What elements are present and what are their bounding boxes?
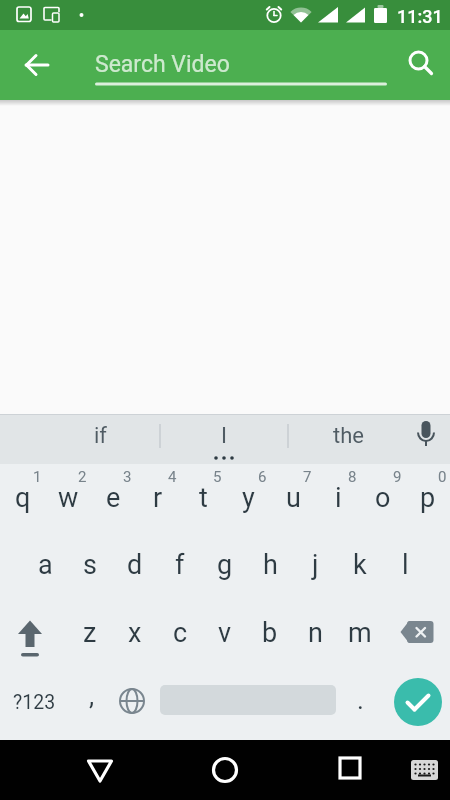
staticText: 3 xyxy=(123,468,132,486)
staticText: . xyxy=(357,685,364,715)
button[interactable]: , xyxy=(72,666,112,726)
staticText: 9 xyxy=(393,468,402,486)
button[interactable]: g xyxy=(203,535,247,595)
staticText: I xyxy=(221,423,227,449)
button[interactable]: t xyxy=(181,470,225,526)
staticText: a xyxy=(38,549,53,581)
button[interactable]: j xyxy=(293,535,337,595)
button[interactable]: z xyxy=(68,603,112,663)
staticText: v xyxy=(218,617,232,649)
staticText: d xyxy=(127,549,143,581)
button[interactable]: i xyxy=(316,470,360,526)
button[interactable]: . xyxy=(340,670,380,730)
staticText: k xyxy=(353,549,367,581)
button[interactable] xyxy=(404,414,450,460)
button[interactable]: ?123 xyxy=(3,672,65,732)
staticText: f xyxy=(175,549,185,581)
staticText: p xyxy=(420,482,436,514)
button[interactable]: p xyxy=(406,470,450,526)
button[interactable] xyxy=(13,41,61,89)
staticText: r xyxy=(153,482,163,514)
button[interactable] xyxy=(395,605,445,663)
staticText: u xyxy=(286,482,301,514)
staticText: 8 xyxy=(348,468,357,486)
button[interactable] xyxy=(8,605,58,663)
button[interactable]: r xyxy=(136,470,180,526)
button[interactable]: q xyxy=(1,470,45,526)
button[interactable]: x xyxy=(113,603,157,663)
button[interactable] xyxy=(394,678,442,726)
staticText: 6 xyxy=(258,468,267,486)
button[interactable] xyxy=(404,752,444,788)
staticText: , xyxy=(89,681,95,711)
button[interactable]: I xyxy=(169,415,279,457)
staticText: x xyxy=(128,617,142,649)
staticText: 11:31 xyxy=(397,6,443,27)
button[interactable]: s xyxy=(68,535,112,595)
staticText: q xyxy=(15,482,31,514)
staticText: h xyxy=(263,549,278,581)
button[interactable]: f xyxy=(158,535,202,595)
button[interactable]: l xyxy=(383,535,427,595)
button[interactable]: the xyxy=(298,415,398,457)
staticText: 1 xyxy=(33,468,42,486)
button[interactable] xyxy=(76,746,124,794)
staticText: b xyxy=(262,617,278,649)
staticText: m xyxy=(348,617,372,649)
staticText: 4 xyxy=(168,468,177,486)
staticText: s xyxy=(83,549,97,581)
staticText: z xyxy=(83,617,97,649)
button[interactable]: c xyxy=(158,603,202,663)
button[interactable]: u xyxy=(271,470,315,526)
button[interactable] xyxy=(110,676,155,728)
button[interactable] xyxy=(201,746,249,794)
staticText: l xyxy=(402,549,409,581)
staticText: 5 xyxy=(213,468,222,486)
staticText: Search Video xyxy=(95,51,230,78)
staticText: 7 xyxy=(303,468,312,486)
staticText: if xyxy=(94,423,107,449)
button[interactable] xyxy=(326,746,374,794)
staticText: g xyxy=(217,549,233,581)
button[interactable]: v xyxy=(203,603,247,663)
staticText: c xyxy=(173,617,188,649)
button[interactable]: k xyxy=(338,535,382,595)
staticText: the xyxy=(333,423,364,449)
staticText: e xyxy=(106,482,121,514)
button[interactable]: e xyxy=(91,470,135,526)
button[interactable]: d xyxy=(113,535,157,595)
staticText: t xyxy=(199,482,208,514)
staticText: i xyxy=(335,482,342,514)
button[interactable]: n xyxy=(293,603,337,663)
button[interactable]: o xyxy=(361,470,405,526)
staticText: y xyxy=(242,482,255,514)
staticText: 0 xyxy=(438,468,447,486)
button[interactable]: if xyxy=(45,415,155,457)
button[interactable]: b xyxy=(248,603,292,663)
staticText: 2 xyxy=(78,468,87,486)
staticText: o xyxy=(375,482,391,514)
staticText: j xyxy=(312,549,319,581)
staticText: w xyxy=(58,482,79,514)
button[interactable]: m xyxy=(338,603,382,663)
button[interactable]: h xyxy=(248,535,292,595)
staticText: ?123 xyxy=(13,691,56,714)
button[interactable]: Search Video xyxy=(95,44,385,84)
button[interactable] xyxy=(395,37,443,85)
button[interactable]: w xyxy=(46,470,90,526)
button[interactable]: y xyxy=(226,470,270,526)
staticText: n xyxy=(308,617,323,649)
button[interactable]: a xyxy=(23,535,67,595)
